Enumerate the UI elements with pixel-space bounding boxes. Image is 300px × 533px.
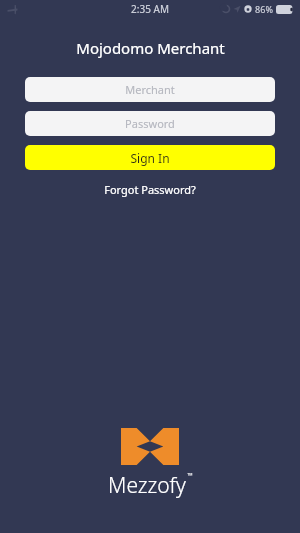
staticText: Mezzofy bbox=[108, 471, 186, 500]
other: Airplane mode bbox=[7, 4, 18, 15]
staticText: 2:35 AM bbox=[131, 2, 169, 16]
button[interactable]: Forgot Password? bbox=[98, 180, 202, 199]
staticText: Password bbox=[125, 116, 175, 131]
staticText: ™ bbox=[187, 471, 193, 481]
button[interactable]: Password bbox=[25, 111, 275, 136]
button[interactable]: Merchant bbox=[25, 77, 275, 102]
button[interactable]: Sign In bbox=[25, 145, 275, 170]
staticText: 86% bbox=[255, 3, 273, 15]
staticText: Mojodomo Merchant bbox=[76, 38, 225, 58]
staticText: Merchant bbox=[125, 82, 175, 97]
staticText: Forgot Password? bbox=[104, 182, 196, 197]
staticText: Sign In bbox=[130, 150, 170, 166]
